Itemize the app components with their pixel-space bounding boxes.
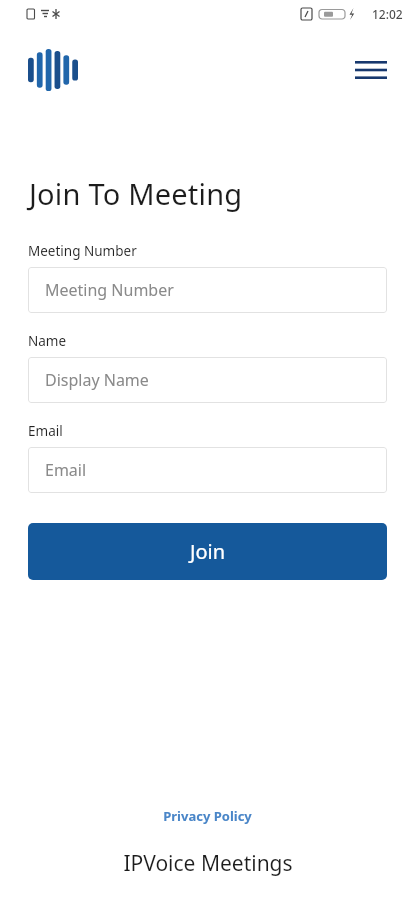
staticText: Email <box>45 459 87 481</box>
button[interactable]: Email <box>28 447 387 493</box>
button[interactable]: Join <box>28 523 387 580</box>
button[interactable]: Meeting Number <box>28 267 387 313</box>
staticText: Join <box>190 538 226 565</box>
staticText: Meeting Number <box>28 242 137 260</box>
staticText: Display Name <box>45 369 149 391</box>
staticText: IPVoice Meetings <box>123 849 293 878</box>
button[interactable]: Menu <box>349 48 393 92</box>
button[interactable]: Display Name <box>28 357 387 403</box>
button[interactable]: Privacy Policy <box>151 803 264 829</box>
staticText: 12:02 <box>372 6 403 22</box>
staticText: Join To Meeting <box>29 174 243 213</box>
staticText: Privacy Policy <box>163 807 252 825</box>
other: IPVoice logo <box>28 49 78 91</box>
staticText: Meeting Number <box>45 279 174 301</box>
staticText: Email <box>28 422 63 440</box>
staticText: Name <box>28 332 67 350</box>
